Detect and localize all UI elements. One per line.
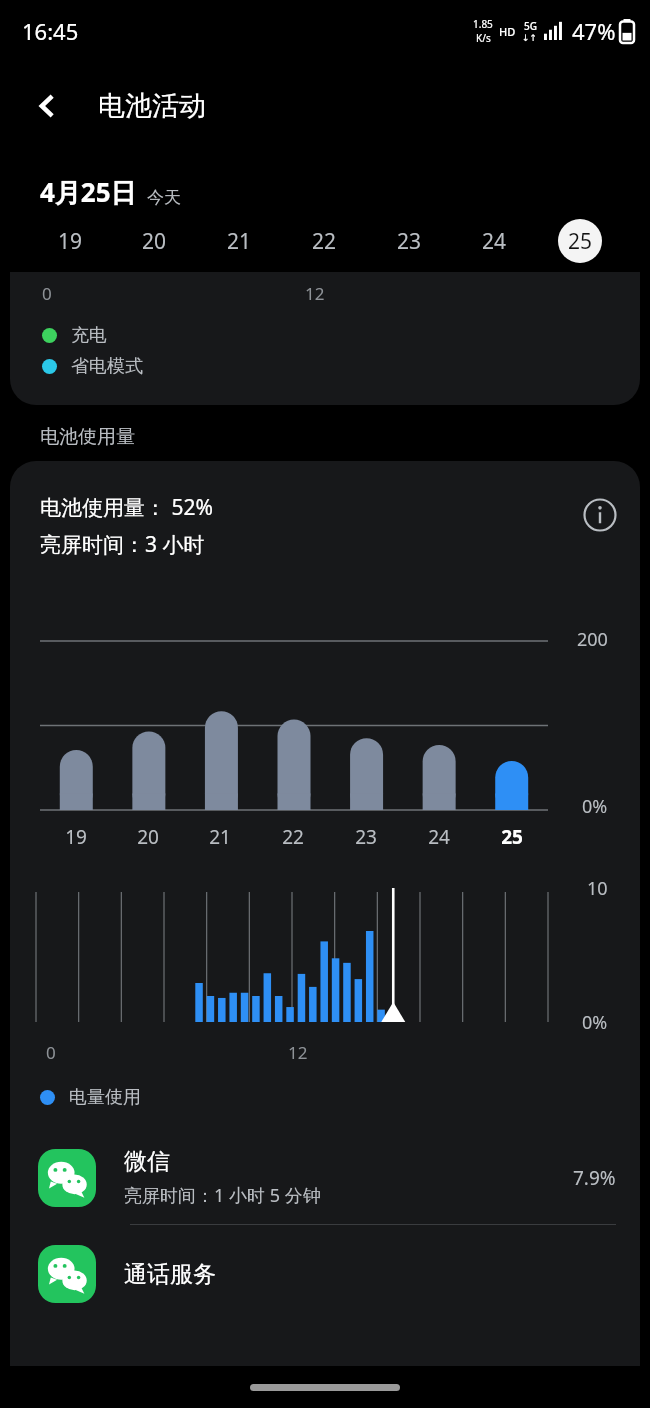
staticText: K/s: [476, 31, 491, 45]
staticText: 23: [355, 824, 377, 850]
staticText: 通话服务: [124, 1260, 216, 1289]
staticText: 0: [46, 1041, 56, 1064]
button[interactable]: 19: [28, 210, 112, 272]
staticText: 19: [65, 824, 87, 850]
staticText: 亮屏时间：3 小时: [40, 530, 205, 559]
staticText: 7.9%: [573, 1165, 616, 1191]
staticText: 0%: [582, 794, 608, 819]
staticText: 21: [227, 227, 252, 256]
button[interactable]: Back: [24, 82, 72, 130]
button[interactable]: 21: [197, 210, 282, 272]
staticText: 电池使用量： 52%: [40, 493, 213, 522]
staticText: 25: [568, 227, 593, 256]
button[interactable]: 24: [452, 210, 537, 272]
staticText: 22: [312, 227, 337, 256]
staticText: 21: [209, 824, 231, 850]
staticText: 12: [305, 282, 325, 305]
staticText: 47%: [572, 16, 616, 46]
button[interactable]: 微信: [10, 1147, 640, 1303]
staticText: 电池使用量: [40, 425, 135, 449]
button[interactable]: 23: [367, 210, 452, 272]
button[interactable]: 0: [10, 272, 640, 405]
staticText: 23: [397, 227, 422, 256]
button[interactable]: 20: [112, 210, 197, 272]
staticText: 20: [142, 227, 167, 256]
staticText: 省电模式: [71, 355, 143, 378]
staticText: 16:45: [22, 16, 79, 46]
button[interactable]: 22: [282, 210, 367, 272]
staticText: 微信: [124, 1147, 170, 1176]
staticText: 12: [288, 1041, 308, 1064]
staticText: 1.85: [473, 17, 493, 31]
staticText: 200: [577, 627, 608, 652]
staticText: 25: [501, 824, 523, 850]
staticText: 电池活动: [98, 89, 206, 123]
staticText: 24: [428, 824, 450, 850]
staticText: 4月25日: [40, 174, 137, 210]
staticText: 0%: [582, 1010, 608, 1035]
staticText: HD: [499, 24, 516, 39]
staticText: 22: [282, 824, 304, 850]
staticText: 今天: [147, 187, 181, 208]
button[interactable]: Info: [578, 493, 622, 537]
staticText: 20: [137, 824, 159, 850]
staticText: 亮屏时间：1 小时 5 分钟: [124, 1183, 321, 1208]
button[interactable]: 25: [537, 210, 622, 272]
staticText: 0: [42, 282, 52, 305]
staticText: ↓↑: [522, 33, 538, 43]
staticText: 5G: [524, 19, 537, 33]
staticText: 电量使用: [69, 1086, 141, 1109]
staticText: 充电: [71, 324, 107, 347]
staticText: 19: [58, 227, 83, 256]
staticText: 24: [482, 227, 507, 256]
staticText: 10: [587, 876, 608, 901]
